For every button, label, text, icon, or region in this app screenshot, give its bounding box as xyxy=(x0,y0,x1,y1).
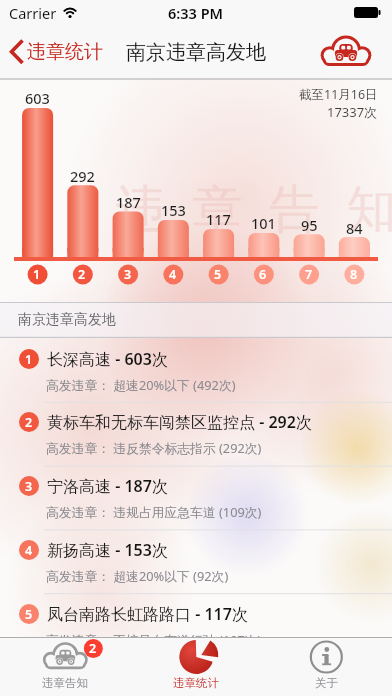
staticText: 关于 xyxy=(315,676,338,690)
button[interactable]: 违章统计 xyxy=(131,637,262,696)
staticText: 4 xyxy=(25,542,33,559)
staticText: 7 xyxy=(305,266,313,283)
staticText: 高发违章： 违规占用应急车道 (109次) xyxy=(46,503,262,520)
staticText: 高发违章： 超速20%以下 (92次) xyxy=(46,567,229,584)
staticText: 2 xyxy=(78,266,86,283)
staticText: 1 xyxy=(33,266,41,283)
staticText: 3 xyxy=(124,266,132,283)
staticText: 长深高速 - 603次 xyxy=(47,348,168,369)
staticText: 153 xyxy=(161,200,186,217)
staticText: 95 xyxy=(301,215,318,232)
staticText: 84 xyxy=(346,218,363,235)
staticText: 高发违章： 不按导向车道行驶 (107次) xyxy=(46,631,262,648)
staticText: 101 xyxy=(251,213,276,230)
staticText: 5 xyxy=(214,266,222,283)
staticText: 603 xyxy=(25,88,50,105)
staticText: 6:33 PM xyxy=(168,3,224,23)
staticText: 宁洛高速 - 187次 xyxy=(47,475,168,496)
staticText: 违章统计 xyxy=(27,40,103,64)
staticText: 8 xyxy=(350,266,358,283)
staticText: 17337次 xyxy=(327,103,378,120)
staticText: 黄标车和无标车闯禁区监控点 - 292次 xyxy=(47,411,312,432)
staticText: 高发违章： 违反禁令标志指示 (292次) xyxy=(46,439,262,456)
staticText: 南京违章高发地 xyxy=(18,311,116,329)
staticText: 117 xyxy=(206,209,231,226)
button[interactable]: 违章告知 xyxy=(0,637,131,696)
staticText: 违章告知 xyxy=(42,676,88,690)
staticText: 1 xyxy=(25,351,33,368)
button[interactable]: 4 xyxy=(0,529,392,593)
staticText: 2 xyxy=(25,414,33,431)
button[interactable] xyxy=(320,30,374,74)
staticText: 187 xyxy=(116,192,141,209)
staticText: 3 xyxy=(25,478,33,495)
staticText: 高发违章： 超速20%以下 (492次) xyxy=(46,376,236,393)
staticText: 292 xyxy=(70,166,95,183)
staticText: 2 xyxy=(89,640,97,657)
staticText: Carrier xyxy=(9,3,57,23)
button[interactable]: 2 xyxy=(0,401,392,465)
staticText: 违章统计 xyxy=(173,676,219,690)
button[interactable]: 关于 xyxy=(261,637,392,696)
staticText: 南京违章高发地 xyxy=(126,40,266,65)
button[interactable]: 违章统计 xyxy=(0,25,130,79)
staticText: 截至11月16日 xyxy=(299,86,378,102)
staticText: 新扬高速 - 153次 xyxy=(47,539,168,560)
staticText: 5 xyxy=(25,606,33,623)
staticText: 6 xyxy=(259,266,267,283)
button[interactable]: 5 xyxy=(0,593,392,657)
staticText: 违章告知 xyxy=(102,178,392,234)
button[interactable]: 3 xyxy=(0,465,392,529)
button[interactable]: 1 xyxy=(0,338,392,402)
staticText: 4 xyxy=(169,266,177,283)
staticText: 凤台南路长虹路路口 - 117次 xyxy=(47,603,248,624)
